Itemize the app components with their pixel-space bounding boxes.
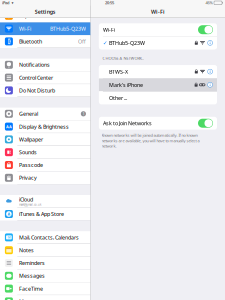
staticText: mark@gmail.co.uk [19, 203, 41, 206]
staticText: Privacy [19, 174, 37, 181]
staticText: Bluetooth [19, 38, 42, 45]
staticText: BTHub5-Q23W [50, 25, 86, 32]
staticText: Notes [19, 247, 34, 254]
button[interactable]: Bluetooth [0, 35, 90, 48]
staticText: Notifications [19, 61, 50, 68]
staticText: Reminders [19, 259, 45, 267]
staticText: 20:55 [105, 0, 114, 5]
staticText: Ask to Join Networks [103, 120, 152, 127]
staticText: Wallpaper [19, 136, 43, 143]
button[interactable]: Do Not Disturb [0, 84, 90, 97]
staticText: FaceTime [19, 285, 43, 292]
button[interactable]: Mark's iPhone [99, 78, 217, 91]
button[interactable]: Privacy [0, 172, 90, 184]
button[interactable]: AA [0, 120, 90, 133]
staticText: Mark's iPhone [109, 81, 143, 88]
staticText: Display & Brightness [19, 123, 69, 130]
button[interactable]: Wallpaper [0, 133, 90, 146]
staticText: Wi-Fi [151, 8, 165, 15]
staticText: ▾ [11, 0, 13, 5]
staticText: Airplane Mode [19, 12, 53, 19]
button[interactable]: Sounds [0, 146, 90, 159]
button[interactable]: Notifications [0, 59, 90, 71]
staticText: AA [6, 124, 12, 129]
staticText: iTunes & App Store [19, 210, 64, 218]
button[interactable]: ✉ [0, 231, 90, 244]
staticText: BTHub5-Q23W [109, 39, 145, 46]
staticText: Control Center [19, 74, 53, 81]
staticText: iPad [2, 0, 10, 5]
button[interactable]: BTWS-X [99, 65, 217, 78]
button[interactable]: A [0, 208, 90, 221]
staticText: 46% [206, 0, 213, 5]
staticText: ✓ [103, 40, 107, 46]
staticText: Wi-Fi [19, 25, 31, 32]
button[interactable]: Reminders [0, 257, 90, 270]
staticText: Messages [19, 272, 45, 279]
staticText: iCloud [19, 196, 33, 203]
staticText: ✉ [7, 235, 10, 240]
staticText: Mail, Contacts, Calendars [19, 234, 79, 241]
button[interactable]: Notes [0, 244, 90, 257]
button[interactable]: FaceTime [0, 282, 90, 295]
button[interactable]: Messages [0, 270, 90, 282]
staticText: 1 [82, 111, 84, 116]
staticText: Settings [35, 8, 56, 15]
staticText: Maps [19, 298, 33, 300]
staticText: General [19, 110, 38, 117]
staticText: Passcode [19, 161, 43, 169]
button[interactable]: General [0, 108, 90, 120]
button[interactable]: Airplane Mode [0, 10, 90, 22]
button[interactable]: Other ... [99, 92, 217, 104]
staticText: Sounds [19, 149, 37, 156]
staticText: A [7, 211, 10, 217]
button[interactable]: Control Center [0, 71, 90, 84]
button[interactable]: Ask to Join Networks [99, 117, 217, 130]
staticText: Other ... [109, 94, 127, 102]
staticText: BTWS-X [109, 68, 128, 75]
button[interactable]: Passcode [0, 159, 90, 172]
staticText: Wi-Fi [103, 26, 115, 33]
staticText: Known networks will be joined automatica… [101, 133, 199, 148]
button[interactable]: iCloud [0, 195, 90, 208]
staticText: Off [78, 38, 86, 45]
button[interactable]: Wi-Fi [0, 22, 90, 35]
button[interactable]: Wi-Fi [99, 23, 217, 36]
button[interactable]: Maps [0, 295, 90, 300]
staticText: CHOOSE A NETWORK... [102, 56, 144, 61]
staticText: Do Not Disturb [19, 87, 55, 94]
button[interactable]: ✓ [99, 36, 217, 49]
